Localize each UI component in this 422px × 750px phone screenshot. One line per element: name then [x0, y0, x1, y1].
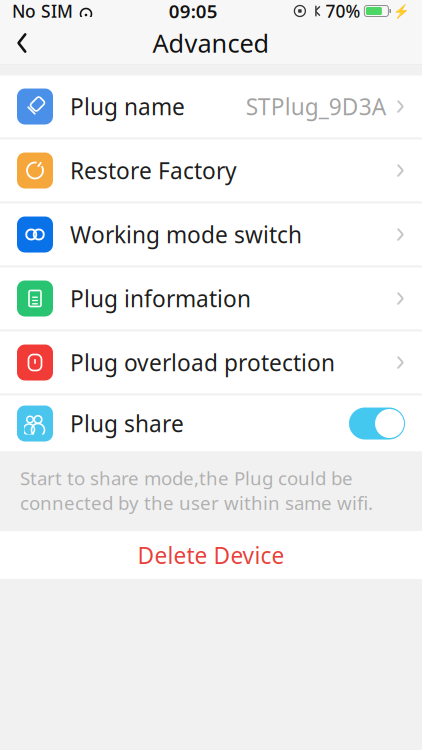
button[interactable]: Plug overload protection: [0, 331, 422, 393]
staticText: 70%: [325, 0, 360, 22]
staticText: Plug information: [70, 283, 251, 313]
staticText: No SIM: [12, 0, 73, 22]
staticText: Start to share mode,the Plug could be co…: [20, 465, 373, 515]
button[interactable]: Plug name: [0, 75, 422, 137]
staticText: Working mode switch: [70, 219, 302, 249]
staticText: ⚡: [393, 3, 410, 19]
staticText: Restore Factory: [70, 155, 237, 185]
button[interactable]: Plug share: [0, 395, 422, 451]
button[interactable]: Delete Device: [0, 531, 422, 579]
button[interactable]: Back: [0, 22, 44, 64]
button[interactable]: Plug information: [0, 267, 422, 329]
staticText: Plug name: [70, 91, 185, 121]
staticText: Plug overload protection: [70, 347, 335, 377]
staticText: STPlug_9D3A: [246, 91, 386, 121]
staticText: Delete Device: [137, 540, 284, 570]
button[interactable]: Restore Factory: [0, 139, 422, 201]
staticText: Advanced: [152, 26, 269, 60]
staticText: 09:05: [169, 0, 218, 23]
staticText: Plug share: [70, 408, 184, 438]
button[interactable]: Working mode switch: [0, 203, 422, 265]
